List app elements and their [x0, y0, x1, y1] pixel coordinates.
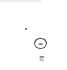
- button[interactable]: Remove: [34, 37, 47, 49]
